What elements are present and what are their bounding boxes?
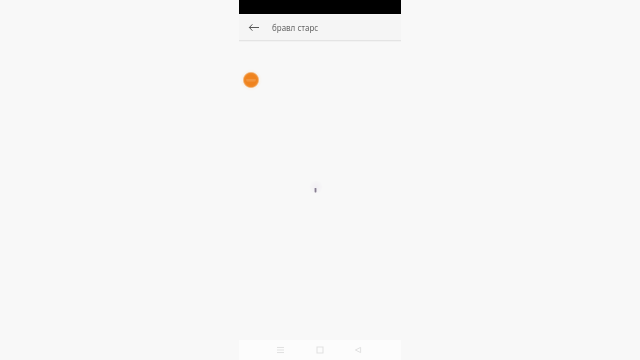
button[interactable]: Back [246, 20, 262, 36]
button[interactable]: Back [348, 340, 368, 360]
button[interactable]: Recent apps [270, 340, 290, 360]
staticText: бравл старс [272, 22, 319, 33]
button[interactable]: Home [310, 340, 330, 360]
button[interactable]: App icon [240, 69, 262, 91]
